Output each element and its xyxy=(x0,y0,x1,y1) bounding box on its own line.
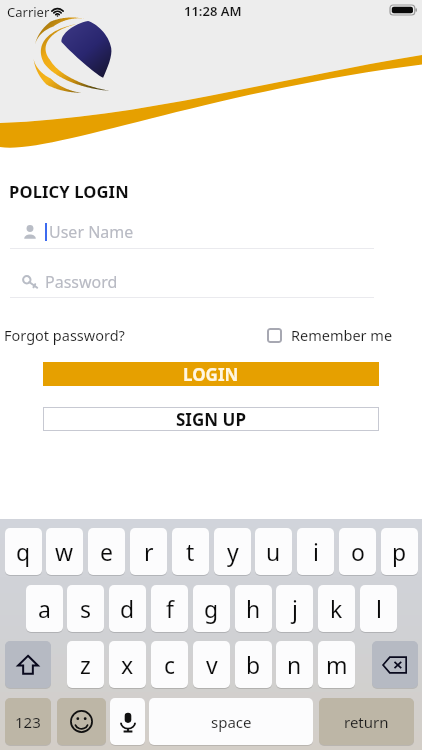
staticText: space xyxy=(211,712,252,732)
button[interactable]: d xyxy=(109,585,146,632)
staticText: b xyxy=(246,649,261,680)
staticText: t xyxy=(186,536,195,567)
button[interactable]: Backspace xyxy=(372,641,418,688)
button[interactable]: f xyxy=(151,585,188,632)
button[interactable]: n xyxy=(276,641,313,688)
staticText: s xyxy=(80,593,92,624)
staticText: POLICY LOGIN xyxy=(9,180,129,203)
button[interactable]: Remember me xyxy=(267,325,393,345)
button[interactable]: h xyxy=(235,585,272,632)
staticText: y xyxy=(227,536,239,567)
staticText: Password xyxy=(45,271,118,293)
staticText: h xyxy=(246,593,261,624)
staticText: g xyxy=(204,593,219,624)
button[interactable]: j xyxy=(276,585,313,632)
staticText: j xyxy=(292,593,298,624)
button[interactable]: 123 xyxy=(5,698,51,745)
button[interactable]: User Name xyxy=(10,214,374,249)
staticText: w xyxy=(55,536,74,567)
button[interactable]: m xyxy=(318,641,355,688)
staticText: n xyxy=(287,649,302,680)
staticText: l xyxy=(376,593,382,624)
button[interactable]: z xyxy=(67,641,104,688)
staticText: Remember me xyxy=(291,325,393,345)
staticText: 11:28 AM xyxy=(184,2,242,20)
staticText: u xyxy=(266,536,281,567)
staticText: SIGN UP xyxy=(176,408,246,431)
staticText: z xyxy=(80,649,91,680)
staticText: LOGIN xyxy=(183,363,239,386)
staticText: p xyxy=(392,536,407,567)
button[interactable]: o xyxy=(339,528,376,575)
button[interactable]: l xyxy=(360,585,397,632)
staticText: m xyxy=(326,649,348,680)
staticText: User Name xyxy=(49,221,134,243)
button[interactable]: Emoji xyxy=(57,698,106,745)
staticText: o xyxy=(351,536,365,567)
staticText: f xyxy=(166,593,174,624)
button[interactable]: w xyxy=(46,528,83,575)
button[interactable]: Shift xyxy=(5,641,51,688)
button[interactable]: LOGIN xyxy=(43,362,379,386)
staticText: k xyxy=(330,593,343,624)
button[interactable]: g xyxy=(193,585,230,632)
button[interactable]: Forgot password? xyxy=(4,325,125,345)
button[interactable]: Dictate xyxy=(110,698,145,745)
button[interactable]: s xyxy=(67,585,104,632)
button[interactable]: q xyxy=(5,528,42,575)
staticText: Forgot password? xyxy=(4,325,125,345)
staticText: q xyxy=(16,536,31,567)
button[interactable]: e xyxy=(88,528,125,575)
button[interactable]: p xyxy=(381,528,418,575)
button[interactable]: Password xyxy=(10,264,374,298)
button[interactable]: return xyxy=(319,698,414,745)
staticText: x xyxy=(121,649,134,680)
staticText: v xyxy=(206,649,218,680)
staticText: e xyxy=(100,536,113,567)
button[interactable]: x xyxy=(109,641,146,688)
staticText: i xyxy=(313,536,319,567)
button[interactable]: b xyxy=(235,641,272,688)
staticText: Carrier xyxy=(7,3,50,21)
staticText: 123 xyxy=(15,712,41,732)
staticText: a xyxy=(38,593,51,624)
staticText: c xyxy=(164,649,176,680)
button[interactable]: c xyxy=(151,641,188,688)
staticText: return xyxy=(344,712,389,732)
button[interactable]: v xyxy=(193,641,230,688)
button[interactable]: SIGN UP xyxy=(43,407,379,431)
button[interactable]: k xyxy=(318,585,355,632)
button[interactable]: u xyxy=(255,528,292,575)
staticText: r xyxy=(144,536,154,567)
button[interactable]: space xyxy=(149,698,313,745)
button[interactable]: t xyxy=(172,528,209,575)
staticText: d xyxy=(120,593,135,624)
button[interactable]: r xyxy=(130,528,167,575)
button[interactable]: i xyxy=(297,528,334,575)
button[interactable]: a xyxy=(26,585,63,632)
button[interactable]: y xyxy=(214,528,251,575)
